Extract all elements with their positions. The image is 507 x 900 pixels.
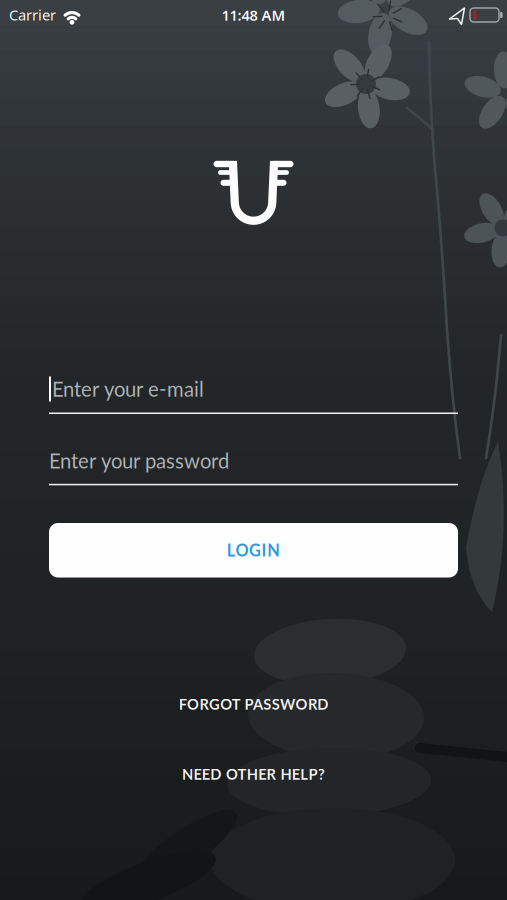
staticText: Carrier	[9, 5, 56, 24]
staticText: NEED OTHER HELP?	[182, 765, 325, 783]
button[interactable]: NEED OTHER HELP?	[182, 765, 325, 783]
button[interactable]: Enter your password	[49, 448, 458, 485]
button[interactable]: Enter your e-mail	[49, 376, 458, 414]
staticText: Enter your password	[49, 448, 229, 473]
staticText: FORGOT PASSWORD	[179, 695, 328, 713]
button[interactable]: FORGOT PASSWORD	[179, 695, 328, 713]
staticText: Enter your e-mail	[52, 377, 204, 401]
staticText: LOGIN	[227, 540, 280, 560]
button[interactable]: LOGIN	[49, 523, 458, 577]
staticText: 11:48 AM	[221, 5, 285, 25]
